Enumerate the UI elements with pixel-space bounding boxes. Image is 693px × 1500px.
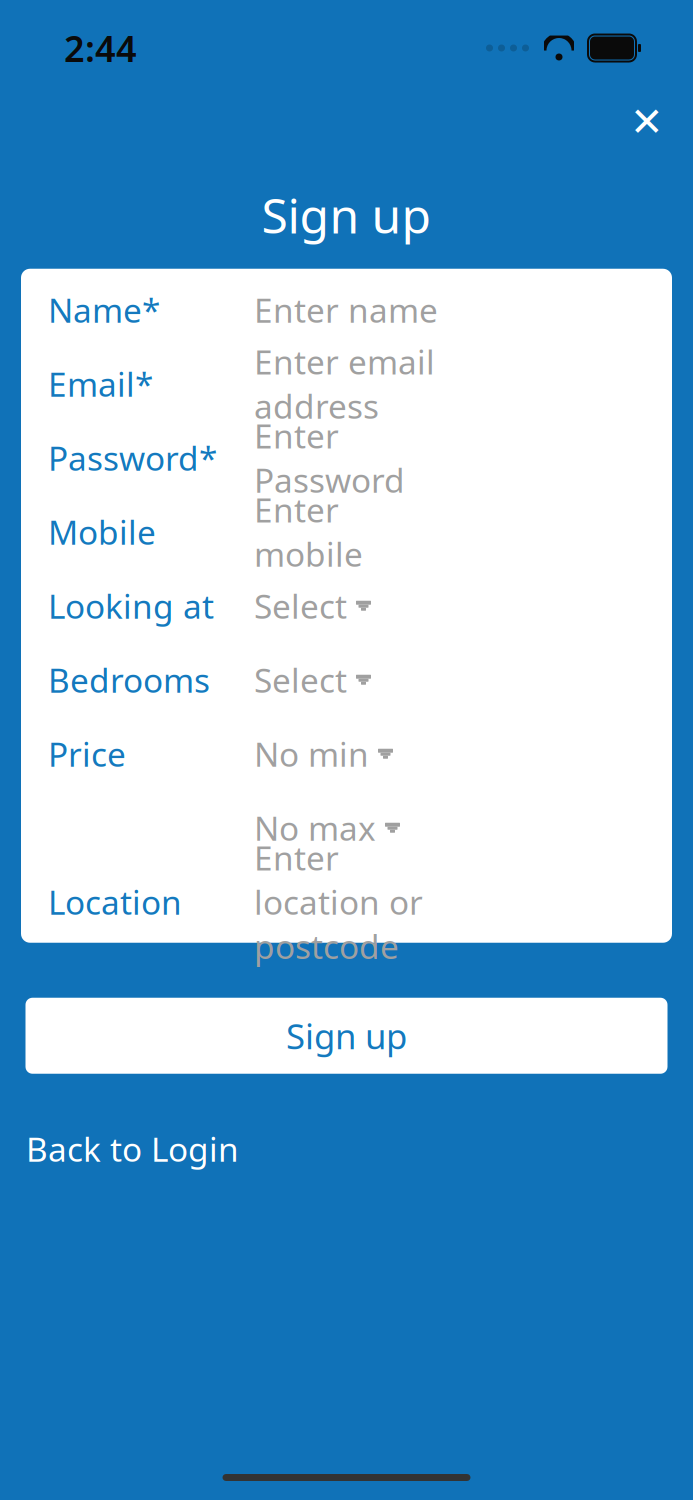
button[interactable]: Bedrooms	[21, 643, 672, 717]
button[interactable]: Mobile	[21, 495, 672, 569]
staticText: Select	[254, 658, 347, 702]
staticText: No min	[254, 732, 369, 776]
button[interactable]: Close	[625, 100, 669, 144]
button[interactable]: Price	[21, 717, 672, 791]
button[interactable]: Location	[21, 865, 672, 939]
staticText: Mobile	[48, 510, 156, 554]
staticText: Looking at	[48, 584, 214, 628]
button[interactable]: Email*	[21, 347, 672, 421]
staticText: Sign up	[286, 1013, 407, 1059]
button[interactable]	[21, 791, 672, 865]
staticText: Enter Password	[254, 413, 405, 502]
button[interactable]: Name*	[21, 273, 672, 347]
button[interactable]: Password*	[21, 421, 672, 495]
button[interactable]: Sign up	[25, 998, 667, 1074]
staticText: Sign up	[261, 183, 431, 247]
staticText: Location	[48, 880, 182, 924]
staticText: Email*	[48, 362, 153, 406]
staticText: Bedrooms	[48, 658, 210, 702]
staticText: Price	[48, 732, 126, 776]
staticText: No max	[254, 806, 376, 850]
staticText: Back to Login	[26, 1127, 239, 1171]
staticText: ✕	[630, 99, 664, 145]
staticText: Enter name	[254, 288, 438, 332]
staticText: Enter mobile	[254, 487, 363, 576]
staticText: Name*	[48, 288, 160, 332]
button[interactable]: Back to Login	[26, 1121, 239, 1177]
staticText: Password*	[48, 436, 217, 480]
staticText: Select	[254, 584, 347, 628]
staticText: 2:44	[64, 24, 137, 72]
staticText: Enter email address	[254, 339, 435, 428]
staticText: Enter location or postcode	[254, 835, 423, 968]
button[interactable]: Looking at	[21, 569, 672, 643]
